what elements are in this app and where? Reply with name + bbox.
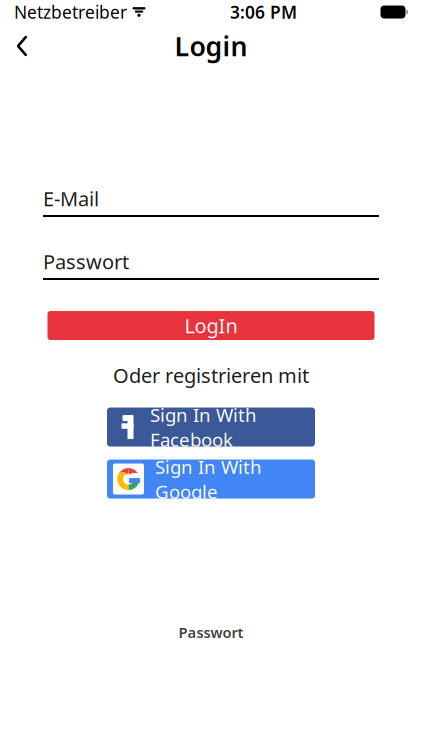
staticText: Netzbetreiber bbox=[14, 0, 127, 23]
staticText: Oder registrieren mit bbox=[113, 362, 309, 389]
staticText: E-Mail bbox=[43, 185, 99, 212]
staticText: Sign In With Google bbox=[155, 454, 262, 504]
staticText: Passwort bbox=[178, 623, 243, 642]
button[interactable]: Sign In With Google bbox=[107, 460, 315, 499]
button[interactable]: Back bbox=[0, 24, 44, 68]
button[interactable]: LogIn bbox=[47, 311, 374, 340]
staticText: 3:06 PM bbox=[230, 0, 297, 23]
button[interactable]: Sign In With Facebook bbox=[107, 408, 315, 447]
staticText: Passwort bbox=[43, 248, 129, 275]
staticText: Login bbox=[174, 28, 247, 64]
staticText: Sign In With Facebook bbox=[150, 402, 257, 452]
staticText: LogIn bbox=[184, 312, 237, 339]
